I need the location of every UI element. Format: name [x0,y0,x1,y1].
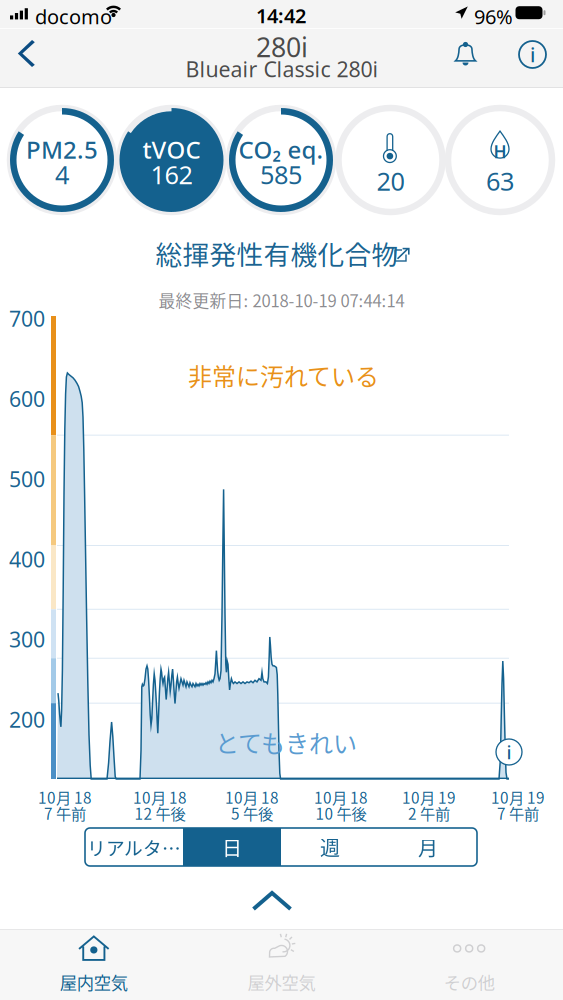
staticText: 週 [320,832,340,861]
button[interactable]: PM2.5 [10,108,114,212]
staticText: 4 [55,158,69,191]
staticText: i [506,740,511,764]
staticText: 屋外空気 [247,969,315,995]
staticText: 5 午後 [231,802,273,824]
staticText: tVOC [142,134,200,165]
button[interactable]: Expand [242,881,302,921]
staticText: 10月 18 [225,786,279,808]
staticText: 20 [376,164,404,198]
staticText: 12 午後 [134,802,185,824]
staticText: 10月 19 [402,786,456,808]
staticText: 月 [418,832,438,861]
button[interactable]: 月 [379,828,477,866]
staticText: 63 [486,164,514,198]
button[interactable]: 週 [281,828,379,866]
staticText: 200 [9,705,45,734]
staticText: とてもきれい [215,725,357,759]
staticText: 500 [9,465,45,493]
staticText: 10月 18 [133,786,187,808]
staticText: 600 [9,384,45,413]
staticText: 700 [9,304,45,333]
staticText: 総揮発性有機化合物 [155,234,398,272]
staticText: 10月 18 [38,786,92,808]
staticText: 10 午後 [315,802,366,824]
staticText: 300 [9,625,45,653]
button[interactable]: tVOC [119,108,223,212]
staticText: PM2.5 [26,134,98,165]
button[interactable]: 日 [183,828,281,866]
staticText: Blueair Classic 280i [185,55,378,83]
staticText: 96% [474,3,513,30]
button[interactable]: その他 [375,924,563,1000]
button[interactable]: 20 [338,108,442,212]
staticText: CO₂ eq. [238,134,323,165]
staticText: i [530,41,535,68]
staticText: H [493,140,506,163]
staticText: 非常に汚れている [188,358,379,392]
staticText: 日 [222,832,242,861]
staticText: 2 午前 [408,802,450,824]
button[interactable]: 屋外空気 [188,924,375,1000]
staticText: 280i [256,29,308,65]
button[interactable]: CO₂ eq. [229,108,333,212]
button[interactable]: H [448,108,552,212]
staticText: 14:42 [256,2,306,29]
button[interactable]: Chart information [496,739,522,765]
staticText: 7 午前 [497,802,539,824]
staticText: 最終更新日: 2018-10-19 07:44:14 [158,288,404,312]
staticText: 7 午前 [44,802,86,824]
button[interactable]: リアルタ… [85,828,183,866]
button[interactable]: Notifications [441,29,490,80]
button[interactable]: Open details [394,249,411,264]
staticText: docomo [35,3,112,30]
staticText: 10月 19 [491,786,545,808]
staticText: リアルタ… [87,833,181,860]
staticText: 162 [150,158,192,191]
staticText: 屋内空気 [60,969,128,995]
staticText: 400 [9,545,45,573]
button[interactable]: 屋内空気 [0,924,188,1000]
button[interactable]: Information [507,29,558,80]
button[interactable]: Back [4,29,49,79]
staticText: 585 [260,158,302,191]
staticText: 10月 18 [314,786,368,808]
staticText: その他 [444,969,495,995]
